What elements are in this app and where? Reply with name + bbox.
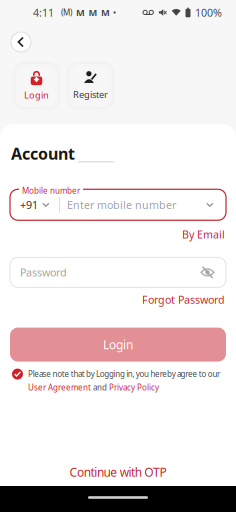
staticText: Please note that by Logging in, you here…: [28, 369, 220, 379]
staticText: Privacy Policy: [109, 382, 159, 393]
staticText: User Agreement: [28, 382, 91, 393]
button[interactable]: Register: [68, 63, 113, 108]
staticText: Continue with OTP: [69, 464, 167, 480]
staticText: Password: [20, 265, 67, 279]
staticText: Login: [24, 89, 49, 101]
staticText: M: [76, 6, 85, 19]
staticText: M: [88, 6, 97, 19]
staticText: (M): [61, 7, 72, 18]
button[interactable]: Login: [10, 328, 226, 362]
staticText: Login: [103, 337, 133, 352]
button[interactable]: Password: [10, 257, 226, 287]
staticText: Enter mobile number: [67, 198, 176, 212]
staticText: Account: [11, 143, 75, 164]
button[interactable]: Back: [11, 32, 31, 52]
staticText: Register: [73, 88, 108, 101]
staticText: +91: [20, 198, 38, 212]
button[interactable]: Login: [14, 63, 59, 108]
button[interactable]: +91: [10, 189, 226, 220]
staticText: By Email: [182, 227, 225, 241]
button[interactable]: Privacy Policy: [109, 382, 159, 393]
staticText: Mobile number: [22, 185, 80, 196]
staticText: 100%: [195, 5, 222, 20]
button[interactable]: Forgot Password: [142, 292, 225, 307]
button[interactable]: Continue with OTP: [69, 464, 167, 480]
staticText: 4:11: [33, 5, 54, 20]
button[interactable]: User Agreement: [28, 382, 91, 393]
staticText: and: [91, 382, 109, 393]
button[interactable]: By Email: [182, 227, 225, 241]
staticText: M: [101, 6, 110, 19]
staticText: Forgot Password: [142, 292, 225, 307]
